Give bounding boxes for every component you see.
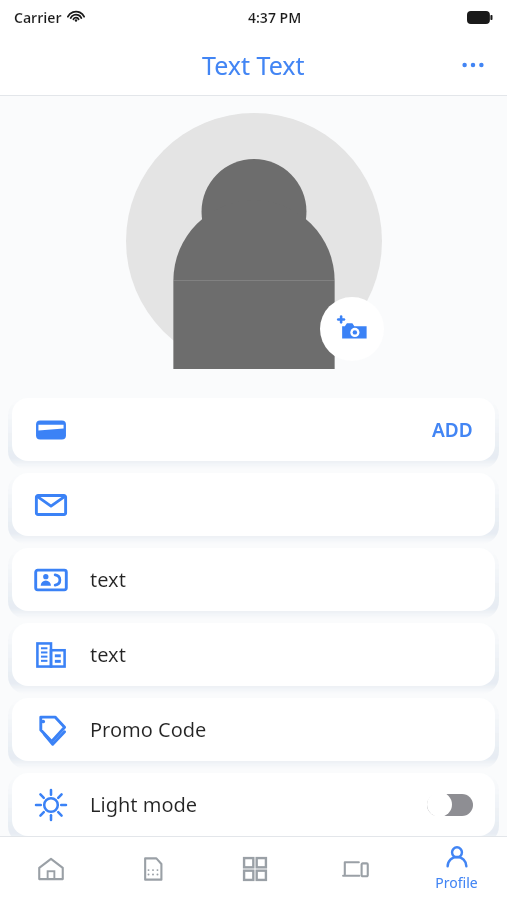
button[interactable]: Devices [305, 837, 406, 900]
button[interactable]: Profile [406, 837, 507, 900]
staticText: 4:37 PM [248, 8, 302, 27]
button[interactable] [427, 792, 473, 817]
button[interactable]: Apps [204, 837, 305, 900]
button[interactable]: Change photo [320, 297, 384, 361]
staticText: Promo Code [90, 716, 207, 743]
button[interactable]: text [12, 548, 495, 611]
button[interactable]: Light mode [12, 773, 495, 836]
button[interactable]: More options [449, 41, 497, 89]
staticText: text [90, 641, 126, 668]
button[interactable]: ADD [12, 398, 495, 461]
staticText: Carrier [14, 8, 62, 27]
staticText: text [90, 566, 126, 593]
button[interactable]: Promo Code [12, 698, 495, 761]
button[interactable]: Home [0, 837, 102, 900]
staticText: Profile [435, 873, 478, 892]
staticText: Light mode [90, 791, 198, 818]
staticText: ADD [432, 417, 473, 443]
staticText: Text Text [202, 48, 305, 82]
button[interactable]: SIM [102, 837, 204, 900]
button[interactable]: text [12, 623, 495, 686]
button[interactable] [12, 473, 495, 536]
